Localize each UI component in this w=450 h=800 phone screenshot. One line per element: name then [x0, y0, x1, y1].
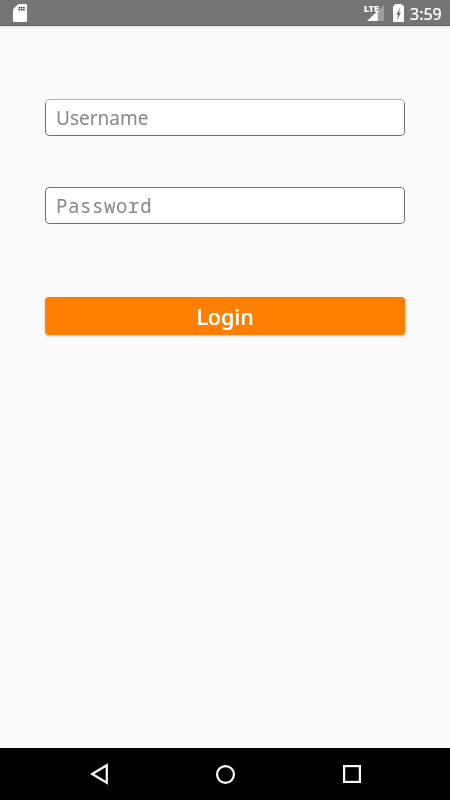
staticText: LTE	[364, 2, 380, 14]
button[interactable]: Password	[45, 187, 405, 224]
staticText: Login	[196, 302, 254, 331]
staticText: Username	[56, 105, 149, 131]
button[interactable]: Recent apps	[327, 748, 377, 800]
staticText: Password	[56, 193, 153, 219]
staticText: 3:59	[410, 3, 442, 25]
button[interactable]: Home	[200, 748, 250, 800]
button[interactable]: Login	[45, 297, 405, 335]
button[interactable]: Username	[45, 99, 405, 136]
button[interactable]: Back	[74, 748, 124, 800]
